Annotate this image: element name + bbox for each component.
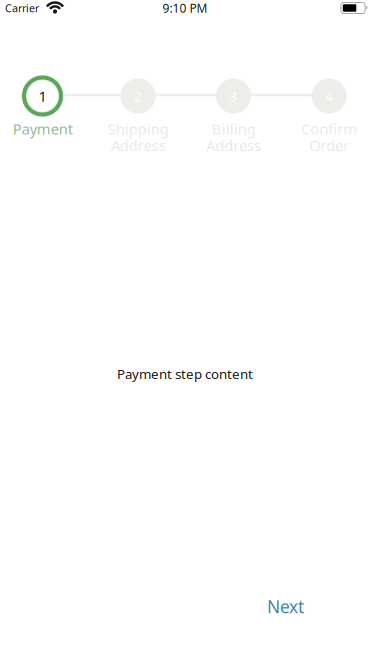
staticText: 3 bbox=[229, 87, 237, 105]
button[interactable]: Next bbox=[257, 589, 314, 624]
staticText: Carrier bbox=[5, 1, 39, 15]
staticText: 1 bbox=[38, 86, 46, 106]
staticText: Billing Address bbox=[206, 119, 261, 155]
staticText: Next bbox=[267, 595, 304, 618]
staticText: 9:10 PM bbox=[162, 0, 207, 16]
staticText: 2 bbox=[134, 87, 142, 105]
staticText: Shipping Address bbox=[107, 119, 168, 155]
staticText: Confirm Order bbox=[301, 119, 357, 155]
staticText: Payment step content bbox=[117, 365, 253, 383]
staticText: Payment bbox=[12, 119, 72, 138]
staticText: 4 bbox=[325, 87, 333, 105]
